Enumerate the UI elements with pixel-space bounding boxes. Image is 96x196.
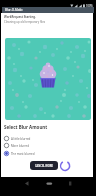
staticText: CANCEL WORK — [35, 164, 53, 167]
staticText: Cleaning up old temporary files — [4, 20, 46, 24]
staticText: Select Blur Amount — [4, 124, 48, 130]
staticText: Blur-O-Matic — [5, 8, 23, 12]
button[interactable]: CANCEL WORK — [30, 161, 58, 170]
staticText: 100% — [86, 4, 93, 8]
button[interactable]: The most blurred — [4, 151, 35, 156]
staticText: A little blurred — [11, 137, 31, 141]
staticText: The most blurred — [11, 152, 35, 156]
button[interactable]: A little blurred — [4, 136, 31, 141]
staticText: More blurred — [11, 144, 29, 148]
button[interactable]: More blurred — [4, 143, 29, 148]
staticText: WorkRequest Starting. — [4, 15, 36, 19]
